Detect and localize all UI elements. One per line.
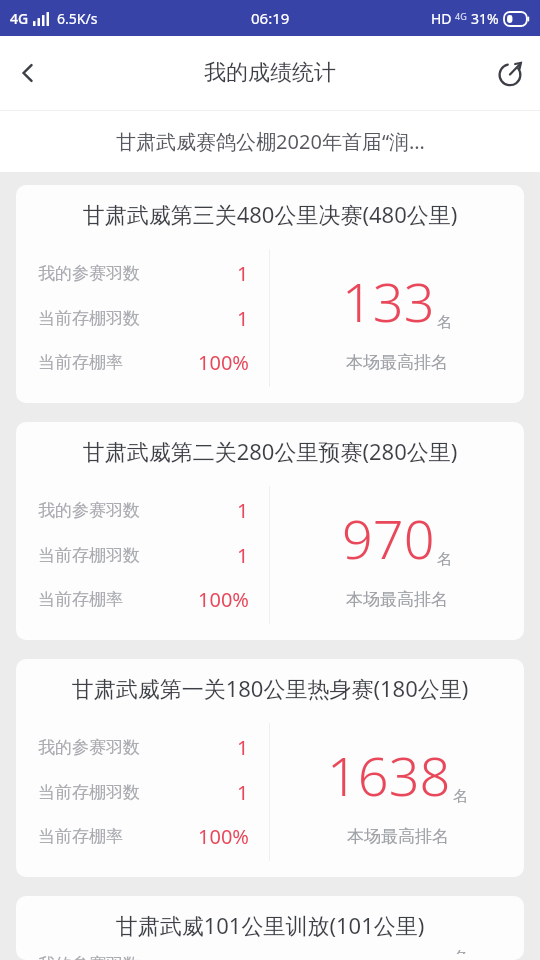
staticText: 1: [237, 305, 249, 332]
staticText: 我的参赛羽数: [38, 500, 140, 521]
staticText: 我的参赛羽数: [38, 954, 140, 960]
staticText: 本场最高排名: [346, 589, 448, 610]
button[interactable]: 甘肃武威第三关480公里决赛(480公里): [16, 185, 524, 403]
staticText: 1638: [327, 738, 451, 812]
staticText: 当前存棚率: [38, 589, 123, 610]
staticText: 当前存棚羽数: [38, 308, 140, 329]
staticText: 我的成绩统计: [204, 59, 336, 87]
staticText: 甘肃武威第一关180公里热身赛(180公里): [24, 673, 516, 703]
button[interactable]: 甘肃武威第二关280公里预赛(280公里): [16, 422, 524, 640]
staticText: 当前存棚羽数: [38, 782, 140, 803]
staticText: 名: [453, 787, 468, 806]
staticText: 甘肃武威第二关280公里预赛(280公里): [24, 436, 516, 466]
staticText: 甘肃武威赛鸽公棚2020年首届“润…: [116, 128, 425, 155]
button[interactable]: Share: [482, 44, 540, 102]
staticText: 本场最高排名: [347, 826, 449, 847]
staticText: 970: [342, 501, 435, 575]
staticText: 1: [237, 779, 249, 806]
staticText: 名: [453, 948, 468, 954]
staticText: 我的参赛羽数: [38, 263, 140, 284]
staticText: 100%: [198, 586, 249, 613]
staticText: 100%: [198, 349, 249, 376]
staticText: 4G: [10, 9, 29, 28]
button[interactable]: 甘肃武威赛鸽公棚2020年首届“润…: [0, 111, 540, 172]
staticText: 133: [342, 264, 435, 338]
staticText: 名: [437, 313, 452, 332]
staticText: 我的参赛羽数: [38, 737, 140, 758]
staticText: 1: [237, 734, 249, 761]
staticText: 6.5K/s: [57, 9, 98, 28]
button[interactable]: 甘肃武威101公里训放(101公里): [16, 896, 524, 960]
staticText: 06:19: [251, 8, 290, 28]
staticText: 1: [237, 542, 249, 569]
staticText: 本场最高排名: [346, 352, 448, 373]
staticText: 100%: [198, 823, 249, 850]
staticText: 当前存棚羽数: [38, 545, 140, 566]
staticText: 甘肃武威101公里训放(101公里): [24, 910, 516, 940]
staticText: 1: [237, 260, 249, 287]
button[interactable]: Back: [0, 45, 56, 101]
staticText: 名: [437, 550, 452, 569]
staticText: 4G: [455, 10, 467, 22]
staticText: HD: [431, 9, 452, 28]
staticText: 31%: [471, 9, 499, 28]
button[interactable]: 甘肃武威第一关180公里热身赛(180公里): [16, 659, 524, 877]
staticText: 甘肃武威第三关480公里决赛(480公里): [24, 199, 516, 229]
staticText: 当前存棚率: [38, 352, 123, 373]
staticText: 当前存棚率: [38, 826, 123, 847]
staticText: 1: [237, 497, 249, 524]
